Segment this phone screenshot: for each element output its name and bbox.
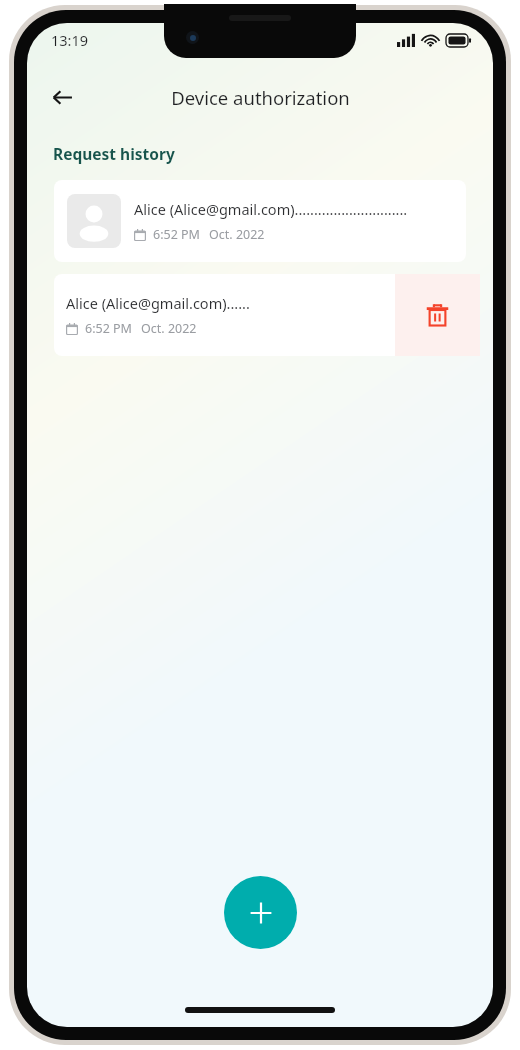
staticText: Request history xyxy=(53,143,175,164)
staticText: Alice (Alice@gmail.com)...... xyxy=(66,293,250,313)
button[interactable]: Back xyxy=(41,77,83,117)
button[interactable]: Alice (Alice@gmail.com).................… xyxy=(54,180,466,262)
staticText: 6:52 PM xyxy=(85,320,132,337)
staticText: 13:19 xyxy=(51,30,89,50)
button[interactable]: Add authorization request xyxy=(224,876,297,949)
staticText: Oct. 2022 xyxy=(141,320,197,337)
button[interactable]: Delete request xyxy=(395,274,480,356)
staticText: 6:52 PM xyxy=(153,226,200,243)
button[interactable]: Alice (Alice@gmail.com)...... xyxy=(54,274,395,356)
staticText: Alice (Alice@gmail.com).................… xyxy=(134,199,408,219)
staticText: Oct. 2022 xyxy=(209,226,265,243)
staticText: Device authorization xyxy=(171,85,350,110)
